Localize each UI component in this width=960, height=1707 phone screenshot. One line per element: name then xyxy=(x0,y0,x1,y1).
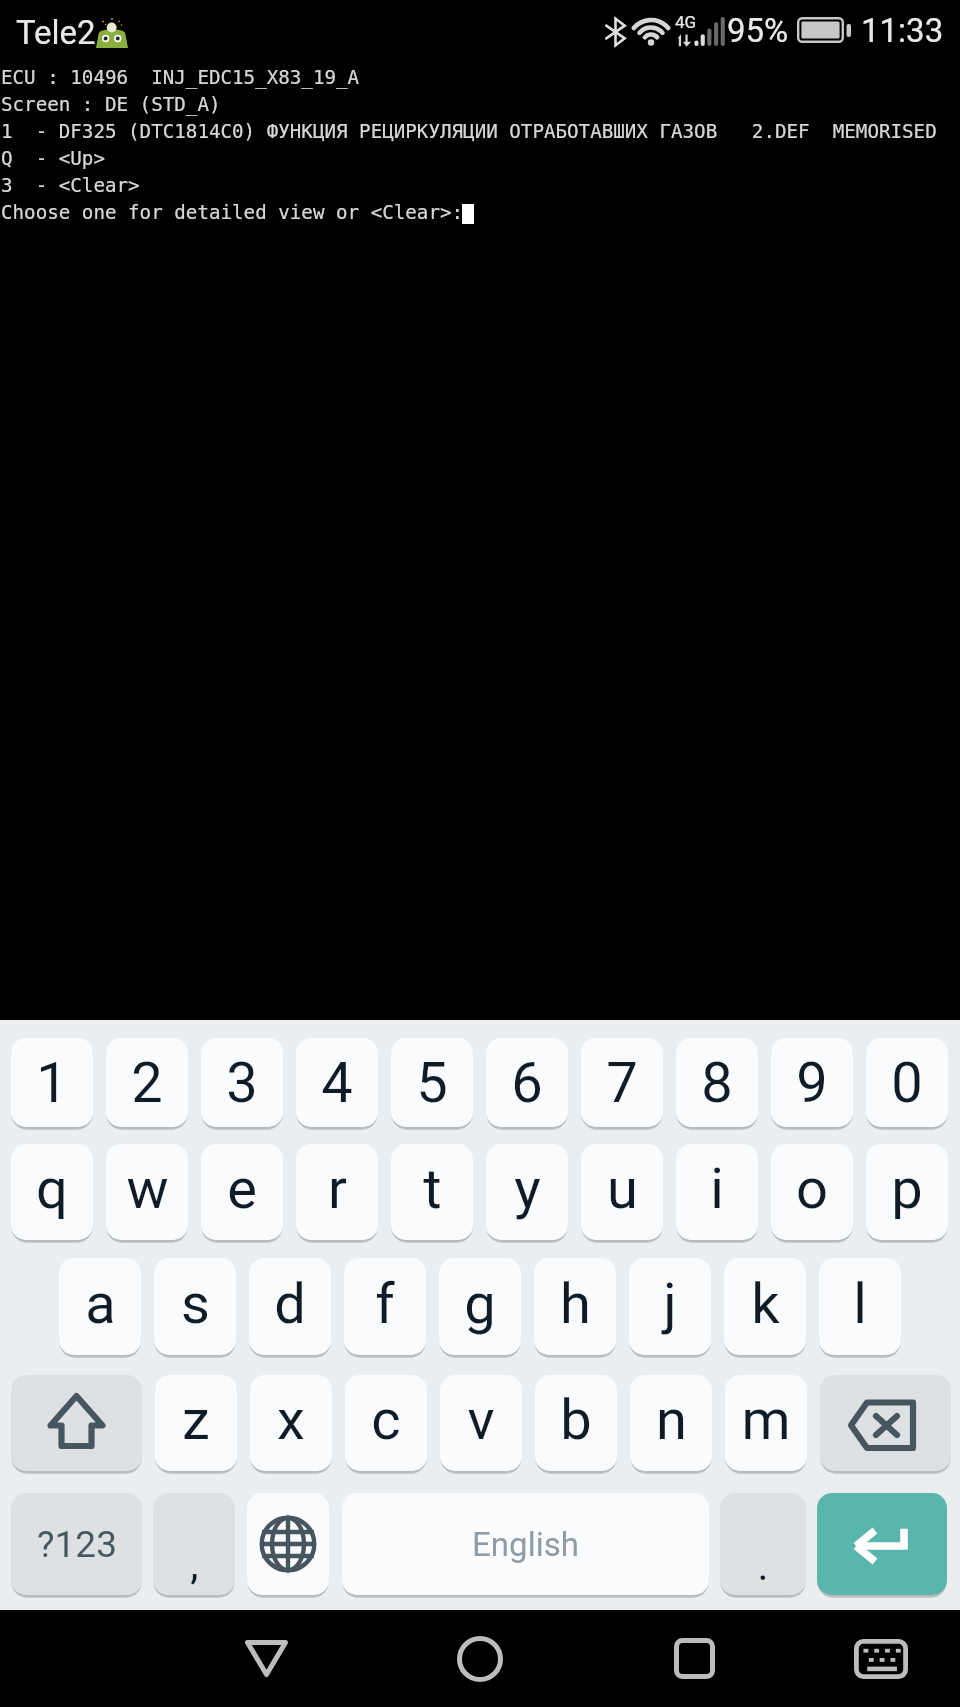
button[interactable]: 4 xyxy=(296,1038,378,1127)
staticText: Choose one for detailed view or <Clear>: xyxy=(1,201,464,223)
staticText: s xyxy=(181,1271,210,1337)
staticText: 2 xyxy=(131,1050,163,1116)
staticText: p xyxy=(891,1156,923,1222)
staticText: 3 - <Clear> xyxy=(1,174,140,196)
staticText: t xyxy=(423,1156,442,1222)
button[interactable]: 6 xyxy=(486,1038,568,1127)
button[interactable]: v xyxy=(440,1375,522,1471)
button[interactable]: a xyxy=(59,1258,141,1355)
staticText: Screen : DE (STD_A) xyxy=(1,93,221,115)
staticText: l xyxy=(853,1271,867,1337)
button[interactable]: b xyxy=(535,1375,617,1471)
staticText: i xyxy=(710,1156,724,1222)
staticText: c xyxy=(371,1387,401,1453)
staticText: 11:33 xyxy=(861,11,944,50)
staticText: 4G xyxy=(675,12,697,32)
button[interactable]: . xyxy=(720,1493,806,1595)
staticText: h xyxy=(560,1271,591,1337)
button[interactable]: c xyxy=(345,1375,427,1471)
button[interactable]: e xyxy=(201,1144,283,1240)
button[interactable]: Shift xyxy=(11,1375,142,1471)
staticText: 0 xyxy=(891,1050,923,1116)
button[interactable]: 7 xyxy=(581,1038,663,1127)
staticText: x xyxy=(277,1387,305,1453)
staticText: 6 xyxy=(511,1050,543,1116)
button[interactable]: k xyxy=(724,1258,806,1355)
button[interactable]: l xyxy=(819,1258,901,1355)
staticText: 8 xyxy=(701,1050,733,1116)
button[interactable]: g xyxy=(439,1258,521,1355)
button[interactable]: p xyxy=(866,1144,948,1240)
staticText: u xyxy=(607,1156,638,1222)
button[interactable]: w xyxy=(106,1144,188,1240)
staticText: y xyxy=(514,1156,541,1222)
staticText: 1 - DF325 (DTC1814C0) ФУНКЦИЯ РЕЦИРКУЛЯЦ… xyxy=(1,120,937,142)
button[interactable]: Change language xyxy=(247,1493,329,1595)
staticText: d xyxy=(274,1271,306,1337)
staticText: z xyxy=(182,1387,210,1453)
button[interactable]: t xyxy=(391,1144,473,1240)
button[interactable]: Back xyxy=(160,1610,372,1707)
staticText: 9 xyxy=(796,1050,828,1116)
button[interactable]: s xyxy=(154,1258,236,1355)
button[interactable]: ?123 xyxy=(11,1493,142,1595)
staticText: n xyxy=(656,1387,687,1453)
button[interactable]: i xyxy=(676,1144,758,1240)
button[interactable]: 0 xyxy=(866,1038,948,1127)
staticText: Q - <Up> xyxy=(1,147,105,169)
staticText: ?123 xyxy=(37,1523,117,1566)
button[interactable]: q xyxy=(11,1144,93,1240)
button[interactable]: u xyxy=(581,1144,663,1240)
staticText: English xyxy=(472,1525,579,1564)
button[interactable]: o xyxy=(771,1144,853,1240)
button[interactable]: r xyxy=(296,1144,378,1240)
staticText: e xyxy=(227,1156,257,1222)
staticText: ECU : 10496 INJ_EDC15_X83_19_A xyxy=(1,66,360,88)
button[interactable]: m xyxy=(725,1375,807,1471)
button[interactable]: 3 xyxy=(201,1038,283,1127)
button[interactable]: d xyxy=(249,1258,331,1355)
staticText: w xyxy=(126,1156,169,1222)
button[interactable]: Recents xyxy=(587,1610,801,1707)
staticText: k xyxy=(751,1271,780,1337)
staticText: m xyxy=(741,1387,791,1453)
staticText: q xyxy=(36,1156,68,1222)
button[interactable]: j xyxy=(629,1258,711,1355)
button[interactable]: Home xyxy=(373,1610,587,1707)
button[interactable]: Enter xyxy=(817,1493,947,1595)
button[interactable]: 8 xyxy=(676,1038,758,1127)
staticText: 95% xyxy=(727,11,789,50)
staticText: o xyxy=(796,1156,828,1222)
button[interactable]: x xyxy=(250,1375,332,1471)
staticText: 5 xyxy=(416,1050,448,1116)
staticText: Tele2 xyxy=(16,13,96,52)
staticText: g xyxy=(464,1271,496,1337)
staticText: r xyxy=(328,1156,347,1222)
staticText: 3 xyxy=(226,1050,258,1116)
button[interactable]: Backspace xyxy=(820,1375,951,1471)
button[interactable]: , xyxy=(153,1493,235,1595)
button[interactable]: y xyxy=(486,1144,568,1240)
staticText: . xyxy=(757,1541,769,1590)
staticText: b xyxy=(560,1387,592,1453)
staticText: f xyxy=(375,1271,395,1337)
staticText: a xyxy=(85,1271,116,1337)
staticText: , xyxy=(190,1540,199,1589)
button[interactable]: f xyxy=(344,1258,426,1355)
button[interactable]: h xyxy=(534,1258,616,1355)
staticText: v xyxy=(467,1387,495,1453)
staticText: j xyxy=(663,1271,677,1337)
button[interactable]: z xyxy=(155,1375,237,1471)
staticText: 1 xyxy=(36,1050,68,1116)
button[interactable]: 1 xyxy=(11,1038,93,1127)
staticText: 7 xyxy=(606,1050,638,1116)
button[interactable]: n xyxy=(630,1375,712,1471)
staticText: 4 xyxy=(321,1050,353,1116)
button[interactable]: 9 xyxy=(771,1038,853,1127)
button[interactable]: 5 xyxy=(391,1038,473,1127)
button[interactable]: English xyxy=(342,1493,709,1595)
button[interactable]: 2 xyxy=(106,1038,188,1127)
button[interactable]: Hide keyboard xyxy=(801,1610,960,1707)
